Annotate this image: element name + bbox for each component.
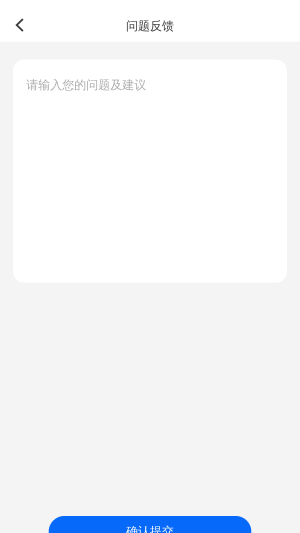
button[interactable]: 确认提交 [49,516,251,533]
button[interactable]: Back [0,0,38,42]
staticText: 请输入您的问题及建议 [26,78,146,92]
button[interactable]: 请输入您的问题及建议 [13,60,287,283]
staticText: 问题反馈 [126,19,174,33]
staticText: 确认提交 [126,524,174,533]
